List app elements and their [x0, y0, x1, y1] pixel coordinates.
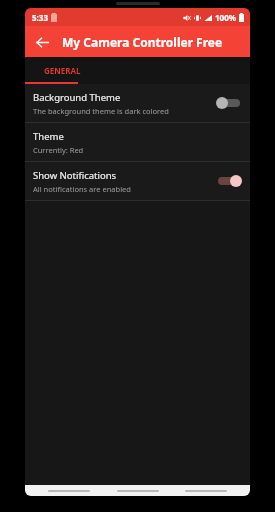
- button[interactable]: Back: [45, 485, 93, 496]
- other: Show notifications toggle, on: [216, 174, 242, 188]
- button[interactable]: Background Theme: [25, 84, 250, 123]
- staticText: Show Notifications: [33, 169, 117, 182]
- staticText: GENERAL: [44, 65, 81, 76]
- button[interactable]: GENERAL: [25, 57, 99, 84]
- other: Background theme toggle, off: [216, 96, 242, 110]
- staticText: Background Theme: [33, 91, 121, 104]
- staticText: 5:33: [32, 12, 48, 23]
- staticText: 100%: [215, 12, 236, 23]
- staticText: All notifications are enabled: [33, 184, 131, 194]
- staticText: Currently: Red: [33, 145, 84, 155]
- button[interactable]: Theme: [25, 123, 250, 162]
- staticText: My Camera Controller Free: [62, 34, 223, 50]
- button[interactable]: Show Notifications: [25, 162, 250, 201]
- staticText: The background theme is dark colored: [33, 106, 169, 116]
- button[interactable]: Recents: [182, 485, 230, 496]
- button[interactable]: Home: [114, 485, 162, 496]
- staticText: Theme: [33, 130, 64, 143]
- button[interactable]: Back: [29, 29, 55, 55]
